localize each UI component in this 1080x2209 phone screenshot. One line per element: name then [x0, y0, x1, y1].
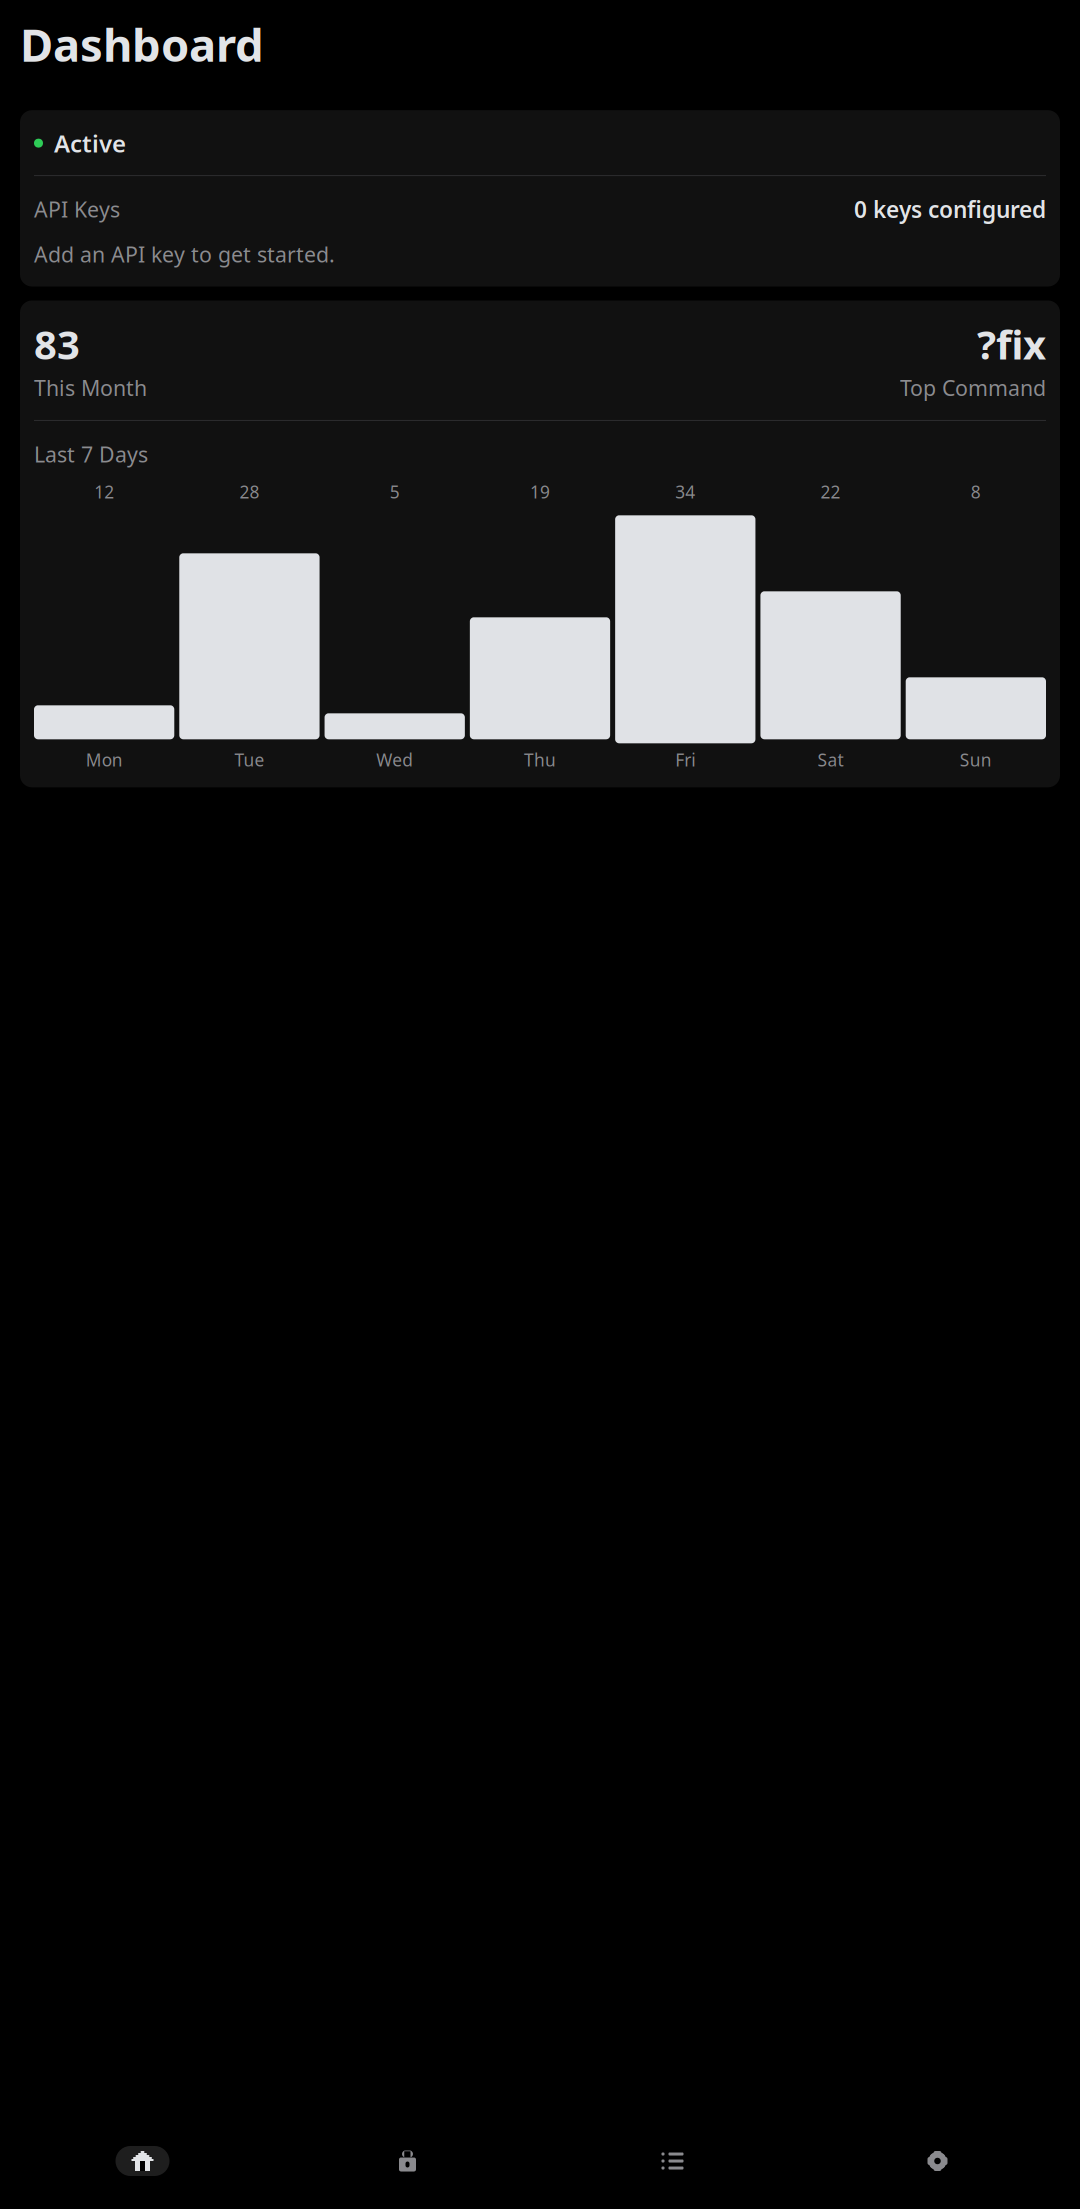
- staticText: Add an API key to get started.: [34, 240, 335, 268]
- staticText: Active: [54, 127, 126, 159]
- staticText: Thu: [524, 748, 556, 771]
- staticText: Wed: [376, 748, 413, 771]
- staticText: 19: [530, 480, 550, 503]
- staticText: Mon: [86, 748, 123, 771]
- staticText: Sat: [818, 748, 844, 771]
- staticText: Sun: [960, 748, 992, 771]
- staticText: ?fix: [977, 317, 1046, 371]
- staticText: API Keys: [34, 195, 120, 223]
- staticText: 12: [94, 480, 114, 503]
- staticText: Last 7 Days: [34, 440, 148, 468]
- button[interactable]: Keys: [275, 2139, 540, 2183]
- staticText: Fri: [675, 748, 695, 771]
- staticText: 0 keys configured: [854, 194, 1046, 224]
- staticText: 22: [821, 480, 841, 503]
- staticText: Tue: [234, 748, 264, 771]
- staticText: 28: [239, 480, 259, 503]
- staticText: 8: [971, 480, 981, 503]
- button[interactable]: Home: [10, 2139, 275, 2183]
- staticText: Top Command: [900, 374, 1046, 402]
- staticText: 34: [675, 480, 695, 503]
- staticText: 83: [34, 317, 80, 371]
- staticText: This Month: [34, 374, 147, 402]
- button[interactable]: Logs: [540, 2139, 805, 2183]
- button[interactable]: Settings: [805, 2139, 1070, 2183]
- staticText: Dashboard: [20, 14, 264, 74]
- staticText: 5: [390, 480, 400, 503]
